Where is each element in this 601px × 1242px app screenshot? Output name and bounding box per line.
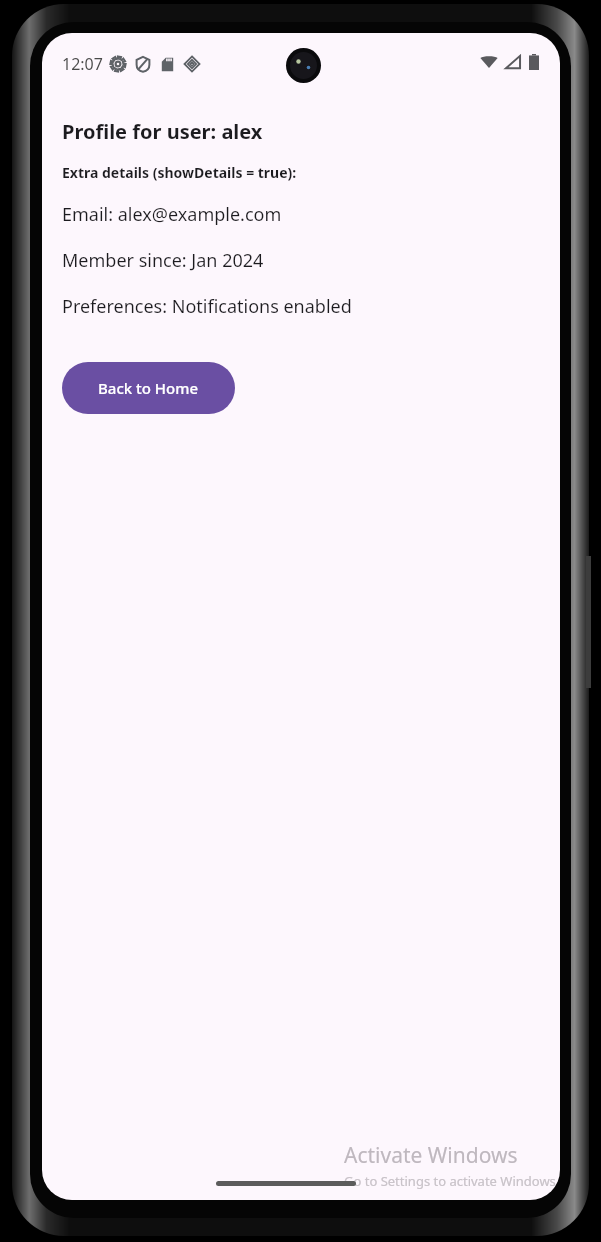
staticText: Activate Windows — [344, 1141, 518, 1170]
staticText: Back to Home — [98, 378, 199, 398]
staticText: Profile for user: alex — [62, 118, 263, 145]
staticText: Email: alex@example.com — [62, 202, 282, 227]
staticText: Preferences: Notifications enabled — [62, 294, 352, 319]
button[interactable]: Back to Home — [62, 362, 235, 414]
staticText: Member since: Jan 2024 — [62, 248, 264, 273]
staticText: Go to Settings to activate Windows. — [344, 1172, 560, 1190]
staticText: Extra details (showDetails = true): — [62, 163, 297, 182]
staticText: 12:07 — [62, 53, 103, 75]
